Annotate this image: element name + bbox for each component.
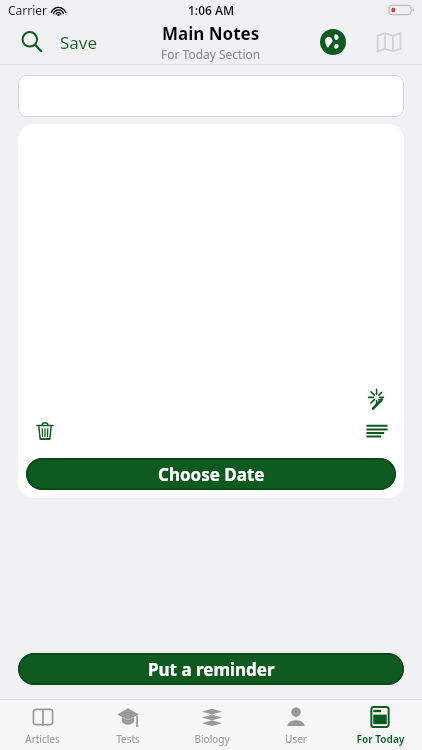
button[interactable]: User [254,700,338,750]
staticText: Main Notes [162,22,260,45]
staticText: Biology [194,732,230,746]
staticText: Put a reminder [148,658,275,681]
button[interactable]: Save [60,31,98,54]
button[interactable] [18,75,404,117]
button[interactable]: Globe [316,25,350,59]
button[interactable]: Tests [85,700,170,750]
staticText: For Today [356,732,405,746]
staticText: For Today Section [161,46,261,62]
staticText: 1:06 AM [188,2,235,18]
button[interactable]: Choose Date [26,458,396,490]
button[interactable]: Articles [0,700,85,750]
button[interactable]: Search [18,28,46,56]
staticText: Carrier [8,2,48,18]
staticText: Tests [116,732,140,746]
button[interactable]: List format [362,416,392,446]
staticText: Choose Date [158,463,265,486]
staticText: User [285,732,307,746]
button[interactable]: Auto format [362,386,392,416]
staticText: Articles [25,732,60,746]
button[interactable]: Map [372,25,406,59]
button[interactable]: Auto format [18,124,404,450]
button[interactable]: For Today [338,700,422,750]
button[interactable]: Put a reminder [18,653,404,685]
button[interactable]: Biology [170,700,254,750]
staticText: Save [60,31,98,54]
button[interactable]: Delete [30,416,60,446]
